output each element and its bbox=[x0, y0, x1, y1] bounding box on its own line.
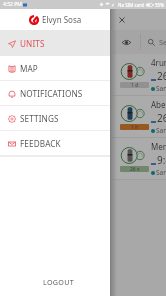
staticText: 4runner bbox=[151, 57, 166, 68]
button[interactable]: 26 s bbox=[113, 138, 166, 179]
staticText: LOGOUT bbox=[43, 277, 75, 287]
staticText: 26 s bbox=[130, 166, 140, 172]
staticText: MAP bbox=[20, 63, 38, 74]
staticText: 4:52 PM bbox=[3, 1, 22, 8]
button[interactable]: NOTIFICATIONS bbox=[0, 81, 110, 105]
staticText: 9:43 bbox=[157, 153, 166, 167]
staticText: Elvyn Sosa bbox=[42, 14, 82, 25]
staticText: 1 d bbox=[131, 82, 139, 88]
button[interactable]: Close bbox=[118, 16, 126, 24]
staticText: Mercedes bbox=[151, 141, 166, 152]
staticText: No SIM card bbox=[118, 2, 144, 8]
staticText: UNITS bbox=[20, 38, 45, 49]
button[interactable]: UNITS bbox=[0, 30, 110, 56]
staticText: San Antonio bbox=[156, 126, 166, 135]
button[interactable]: 1 h bbox=[113, 96, 166, 137]
staticText: NOTIFICATIONS bbox=[20, 88, 83, 99]
button[interactable]: Visibility bbox=[113, 30, 140, 54]
staticText: 26 bbox=[157, 69, 166, 83]
button[interactable]: FEEDBACK bbox=[0, 131, 110, 155]
staticText: San Antonio bbox=[156, 168, 166, 177]
staticText: 55% bbox=[155, 2, 164, 8]
button[interactable]: Search bbox=[141, 30, 166, 54]
staticText: Search bbox=[159, 37, 166, 47]
staticText: 1 h bbox=[131, 124, 139, 130]
staticText: SETTINGS bbox=[20, 113, 59, 124]
staticText: 26 bbox=[157, 111, 166, 125]
button[interactable]: MAP bbox=[0, 56, 110, 80]
staticText: San Antonio bbox=[156, 84, 166, 93]
button[interactable]: 1 d bbox=[113, 54, 166, 95]
button[interactable]: LOGOUT bbox=[0, 270, 110, 294]
staticText: Abelino bbox=[151, 99, 166, 110]
staticText: FEEDBACK bbox=[20, 138, 61, 149]
button[interactable]: SETTINGS bbox=[0, 106, 110, 130]
